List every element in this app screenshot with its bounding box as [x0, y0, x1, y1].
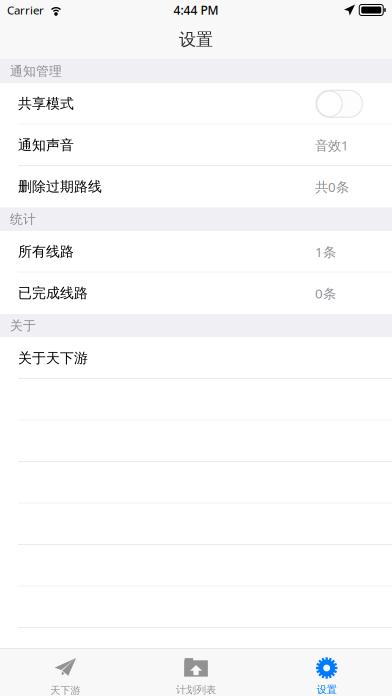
button[interactable]: 已完成线路	[0, 272, 392, 314]
staticText: 已完成线路	[18, 284, 88, 302]
staticText: 天下游	[50, 684, 80, 696]
staticText: 共0条	[315, 178, 349, 196]
staticText: 所有线路	[18, 243, 74, 260]
button[interactable]: 共享模式	[0, 83, 392, 124]
button[interactable]: 删除过期路线	[0, 166, 392, 207]
staticText: 1条	[315, 243, 336, 261]
button[interactable]: 天下游	[0, 648, 131, 696]
button[interactable]: 所有线路	[0, 231, 392, 272]
staticText: 关于天下游	[18, 349, 88, 367]
staticText: 设置	[317, 683, 337, 696]
staticText: 通知管理	[10, 63, 62, 79]
staticText: Carrier	[7, 2, 44, 18]
button[interactable]: 关于天下游	[0, 337, 392, 379]
staticText: 共享模式	[18, 95, 74, 112]
staticText: 计划列表	[176, 684, 216, 696]
button[interactable]: 通知声音	[0, 124, 392, 166]
button[interactable]: 计划列表	[131, 648, 261, 696]
staticText: 统计	[10, 211, 36, 227]
staticText: 通知声音	[18, 136, 74, 154]
button[interactable]: 设置	[261, 648, 392, 696]
staticText: 设置	[179, 29, 213, 50]
staticText: 4:44 PM	[173, 2, 218, 18]
staticText: 音效1	[315, 136, 349, 154]
staticText: 删除过期路线	[18, 178, 102, 195]
staticText: 关于	[10, 318, 36, 334]
staticText: 0条	[315, 284, 336, 302]
